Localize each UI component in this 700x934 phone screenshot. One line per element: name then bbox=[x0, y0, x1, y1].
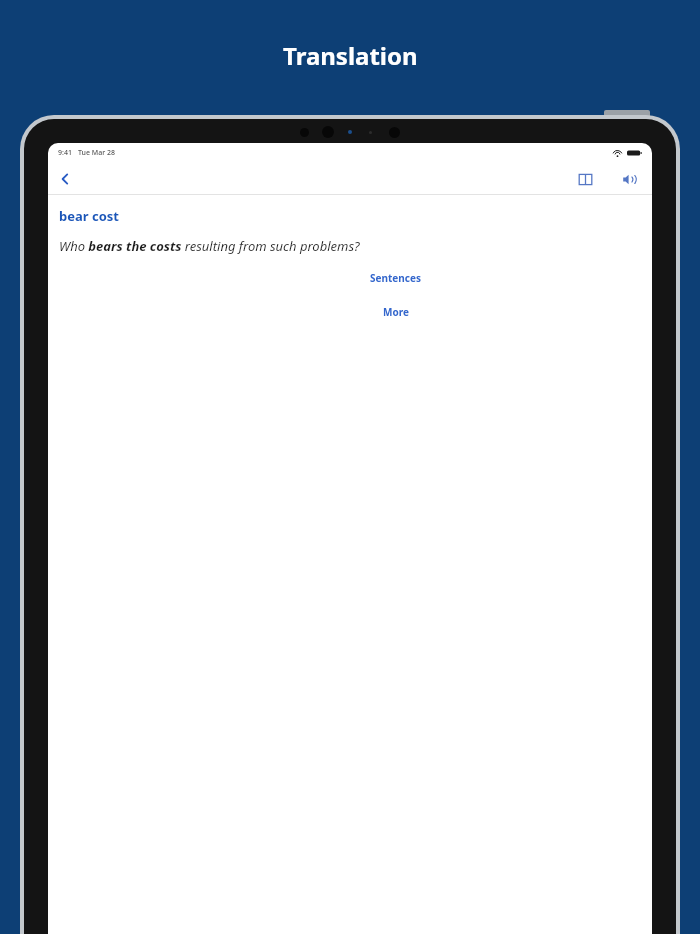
staticText: bear cost bbox=[59, 207, 119, 225]
staticText: Sentences bbox=[370, 271, 421, 285]
button[interactable]: Dictionary bbox=[570, 164, 600, 194]
staticText: Tue Mar 28 bbox=[78, 148, 116, 158]
button[interactable]: Back bbox=[48, 163, 82, 194]
staticText: Who bears the costs resulting from such … bbox=[59, 237, 360, 255]
staticText: 9:41 bbox=[58, 148, 72, 158]
button[interactable]: Sentences bbox=[367, 269, 424, 287]
button[interactable]: More bbox=[380, 303, 412, 321]
button[interactable]: Pronounce bbox=[614, 164, 644, 194]
button[interactable]: bear cost bbox=[59, 207, 641, 225]
staticText: More bbox=[383, 305, 409, 319]
staticText: Translation bbox=[283, 39, 418, 72]
